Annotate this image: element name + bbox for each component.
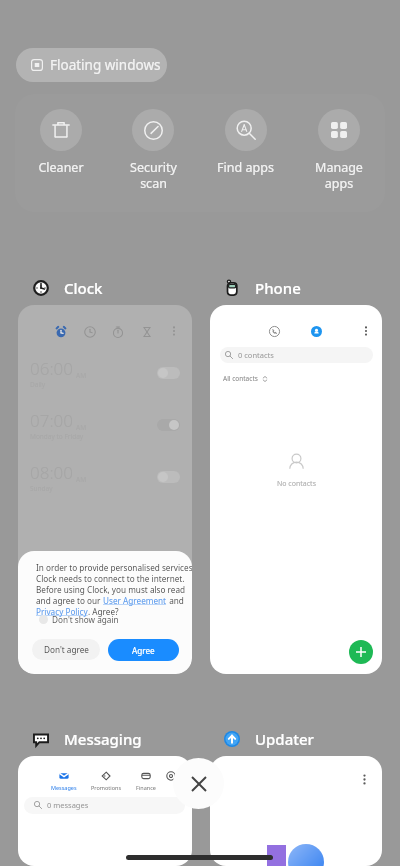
button[interactable]: Updater	[224, 729, 314, 749]
button[interactable]: Messaging	[33, 729, 142, 749]
button[interactable]: Agree	[108, 639, 179, 661]
staticText: Before using Clock, you must also read	[36, 584, 186, 595]
staticText: Messages	[51, 784, 77, 791]
staticText: Clock	[64, 278, 103, 298]
staticText: Privacy Policy	[36, 606, 88, 617]
staticText: . Agree?	[88, 606, 119, 617]
button[interactable]: Security scan	[107, 94, 199, 212]
staticText: Updater	[255, 729, 314, 749]
button[interactable]: Clock	[33, 278, 103, 298]
staticText: Don't show again	[52, 614, 119, 625]
staticText: In order to provide personalised service…	[36, 562, 192, 573]
button[interactable]: Manage apps	[292, 94, 385, 212]
staticText: Agree	[132, 645, 155, 656]
staticText: Finance	[136, 784, 156, 791]
button[interactable]: Find apps	[199, 94, 292, 212]
staticText: Manage apps	[315, 159, 363, 191]
button[interactable]	[150, 771, 192, 784]
staticText: Clock needs to connect to the internet.	[36, 573, 185, 584]
button[interactable]: Messages	[18, 756, 192, 866]
staticText: Security scan	[130, 159, 177, 191]
staticText: Phone	[255, 278, 301, 298]
button[interactable]: Finance	[125, 771, 167, 791]
button[interactable]: Don't agree	[32, 639, 100, 660]
staticText: All contacts	[223, 374, 258, 383]
button[interactable]: 06:00	[18, 305, 192, 674]
button[interactable]: Promotions	[85, 771, 127, 791]
staticText: 0 contacts	[238, 350, 274, 360]
button[interactable]: Cleaner	[15, 94, 107, 212]
staticText: Find apps	[217, 159, 274, 176]
staticText: Promotions	[91, 784, 122, 791]
staticText: 0 messages	[47, 800, 89, 810]
button[interactable]: Close all	[173, 758, 224, 809]
staticText: Floating windows	[50, 56, 161, 74]
staticText: Messaging	[64, 729, 142, 749]
button[interactable]: Floating windows	[16, 48, 167, 82]
button[interactable]: Phone	[224, 278, 301, 298]
staticText: Cleaner	[38, 159, 84, 176]
button[interactable]: Add contact	[349, 640, 373, 664]
staticText: Don't agree	[44, 644, 89, 655]
button[interactable]: 0 contacts	[210, 305, 382, 674]
staticText: No contacts	[277, 479, 316, 489]
button[interactable]: Messages	[43, 771, 85, 791]
button[interactable]	[210, 756, 382, 866]
staticText: User Agreement	[103, 595, 167, 606]
staticText: and agree to our	[36, 595, 103, 606]
staticText: and	[167, 595, 184, 606]
